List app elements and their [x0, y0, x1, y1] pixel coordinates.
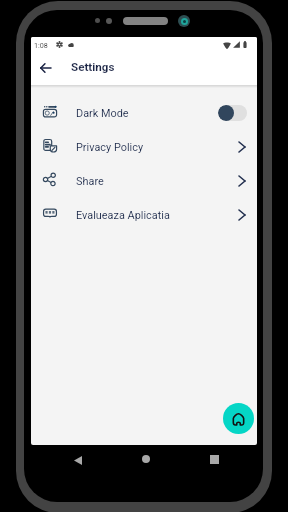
staticText: Settings	[71, 60, 115, 74]
button[interactable]: Dark Mode	[31, 96, 257, 130]
button[interactable]: Share	[31, 164, 257, 198]
button[interactable]: Home	[223, 403, 254, 434]
button[interactable]: Home	[134, 447, 158, 471]
staticText: Share	[76, 175, 104, 188]
button[interactable]: Dark Mode toggle	[218, 105, 247, 121]
staticText: 1:08	[34, 41, 48, 49]
staticText: Evalueaza Aplicatia	[76, 209, 170, 222]
button[interactable]: Privacy Policy	[31, 130, 257, 164]
button[interactable]: Evalueaza Aplicatia	[31, 198, 257, 232]
staticText: Privacy Policy	[76, 141, 144, 154]
button[interactable]: Back	[33, 55, 58, 80]
button[interactable]: Back	[66, 448, 90, 472]
staticText: Dark Mode	[76, 107, 129, 120]
button[interactable]: Recent apps	[202, 447, 226, 471]
